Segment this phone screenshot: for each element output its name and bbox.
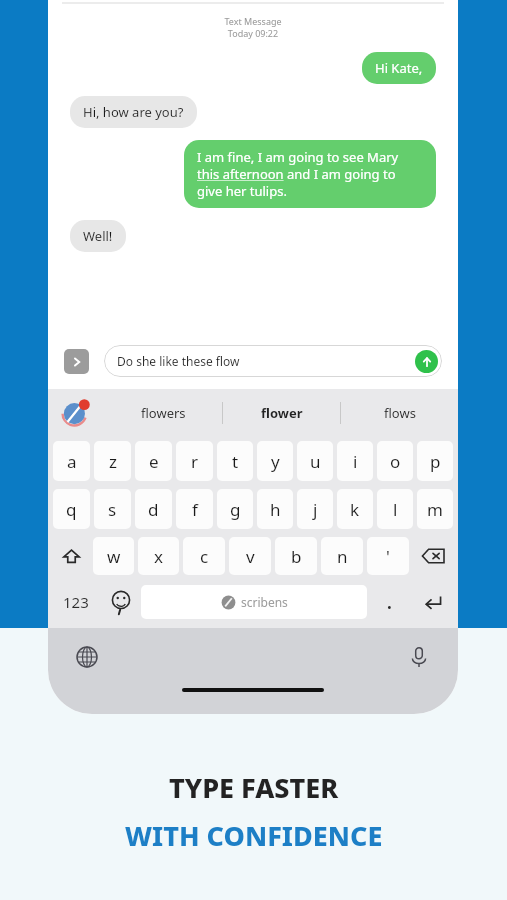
staticText: WITH CONFIDENCE [125,817,383,854]
staticText: Hi, how are you? [83,103,184,121]
staticText: s [108,498,117,521]
button[interactable]: u [297,441,333,481]
button[interactable]: v [229,537,271,575]
staticText: Hi Kate, [375,59,423,77]
button[interactable]: g [217,489,253,529]
staticText: Text Message [70,15,436,27]
button[interactable]: z [94,441,131,481]
staticText: e [149,450,159,473]
button[interactable]: j [297,489,333,529]
staticText: j [313,498,318,521]
staticText: m [427,498,443,521]
button[interactable]: Hi Kate, [362,52,436,84]
button[interactable]: Hi, how are you? [70,96,197,128]
staticText: x [154,545,163,568]
button[interactable]: r [176,441,213,481]
button[interactable]: t [217,441,253,481]
button[interactable]: i [337,441,373,481]
staticText: t [232,450,239,473]
staticText: flows [384,404,416,422]
button[interactable]: Voice input [402,640,436,674]
button[interactable]: s [94,489,131,529]
button[interactable]: w [93,537,134,575]
button[interactable]: b [275,537,317,575]
staticText: u [310,450,321,473]
staticText: i [353,450,358,473]
button[interactable]: m [417,489,453,529]
staticText: v [246,545,255,568]
staticText: Well! [83,227,113,245]
staticText: g [230,498,241,521]
staticText: d [148,498,159,521]
button[interactable]: p [417,441,453,481]
staticText: . [387,591,392,614]
button[interactable]: Do she like these flow [104,345,442,377]
button[interactable]: . [367,579,411,625]
staticText: ' [386,545,390,568]
staticText: r [191,450,199,473]
button[interactable]: scribens [141,585,367,619]
button[interactable]: e [135,441,172,481]
button[interactable]: y [257,441,293,481]
button[interactable]: flowers [104,389,222,437]
staticText: h [270,498,281,521]
staticText: TYPE FASTER [169,769,339,806]
staticText: o [390,450,401,473]
button[interactable]: Enter [411,579,455,625]
staticText: f [192,498,198,521]
button[interactable]: More apps [64,349,89,374]
staticText: l [393,498,398,521]
button[interactable]: f [176,489,213,529]
button[interactable]: 123 [51,579,101,625]
staticText: z [109,450,117,473]
button[interactable]: Backspace [411,533,455,579]
staticText: scribens [241,594,288,610]
staticText: Do she like these flow [117,353,415,369]
staticText: q [66,498,77,521]
staticText: w [107,545,121,568]
button[interactable]: flower [223,389,340,437]
button[interactable]: Send [415,350,438,373]
button[interactable]: c [183,537,225,575]
button[interactable]: Change language [70,640,104,674]
button[interactable]: I am fine, I am going to see Mary this a… [184,140,436,208]
staticText: Today 09:22 [70,27,436,39]
staticText: 123 [63,592,89,612]
button[interactable]: d [135,489,172,529]
button[interactable]: flows [341,389,458,437]
button[interactable]: Scribens [48,389,104,437]
button[interactable]: n [321,537,363,575]
staticText: flower [261,404,303,422]
button[interactable]: h [257,489,293,529]
button[interactable]: o [377,441,413,481]
button[interactable]: Well! [70,220,126,252]
staticText: c [200,545,209,568]
staticText: y [271,450,280,473]
staticText: p [430,450,441,473]
button[interactable]: q [53,489,90,529]
staticText: a [67,450,77,473]
staticText: I am fine, I am going to see Mary this a… [197,148,423,200]
button[interactable]: ' [367,537,409,575]
staticText: flowers [141,404,186,422]
button[interactable]: k [337,489,373,529]
button[interactable]: Shift [51,533,91,579]
button[interactable]: x [138,537,179,575]
button[interactable]: a [53,441,90,481]
staticText: b [291,545,302,568]
button[interactable]: Emoji [101,579,141,625]
button[interactable]: l [377,489,413,529]
staticText: n [337,545,348,568]
staticText: k [350,498,360,521]
